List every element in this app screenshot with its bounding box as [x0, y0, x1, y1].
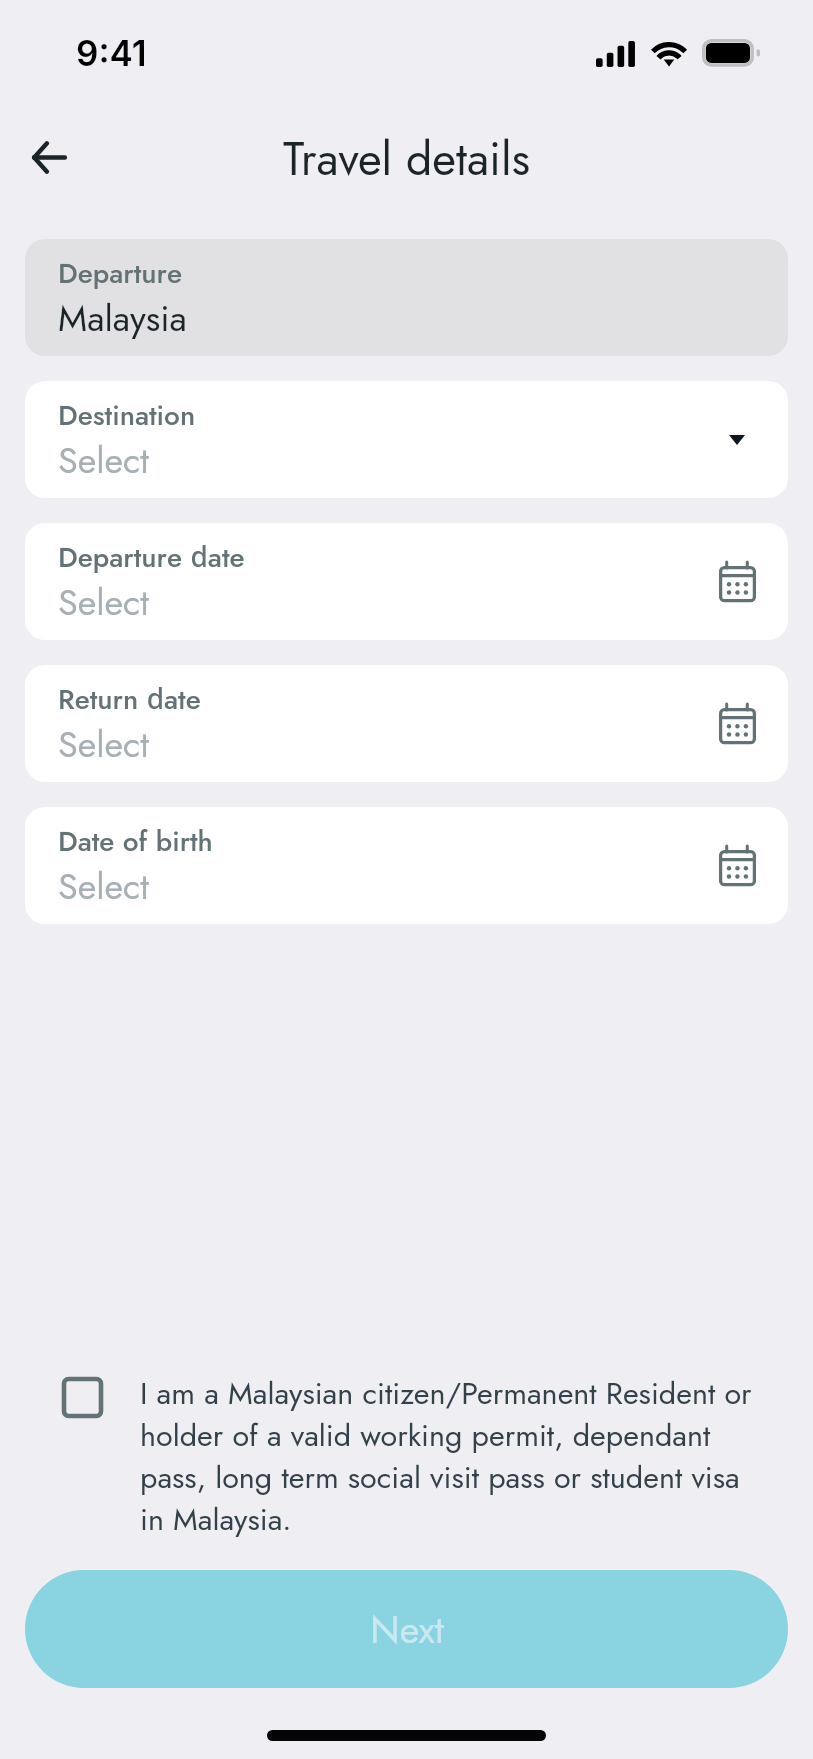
- button[interactable]: Next: [25, 1570, 788, 1688]
- button[interactable]: Date of birth: [25, 807, 788, 924]
- button[interactable]: Departure date: [25, 523, 788, 640]
- button[interactable]: Back: [16, 124, 82, 190]
- staticText: Destination: [58, 395, 196, 435]
- staticText: Select: [58, 860, 149, 912]
- button[interactable]: Consent checkbox: [64, 1371, 756, 1542]
- button[interactable]: Destination: [25, 381, 788, 498]
- button[interactable]: Departure: [25, 239, 788, 356]
- staticText: 9:41: [76, 32, 147, 74]
- other: Consent checkbox: [64, 1379, 101, 1416]
- staticText: Departure date: [58, 537, 245, 577]
- staticText: I am a Malaysian citizen/Permanent Resid…: [140, 1371, 756, 1542]
- staticText: Malaysia: [58, 292, 187, 344]
- staticText: Return date: [58, 679, 201, 719]
- staticText: Select: [58, 434, 149, 486]
- staticText: Travel details: [283, 126, 531, 192]
- button[interactable]: Return date: [25, 665, 788, 782]
- staticText: Select: [58, 718, 149, 770]
- staticText: Select: [58, 576, 149, 628]
- staticText: Date of birth: [58, 821, 213, 861]
- staticText: Next: [370, 1602, 444, 1657]
- staticText: Departure: [58, 253, 183, 293]
